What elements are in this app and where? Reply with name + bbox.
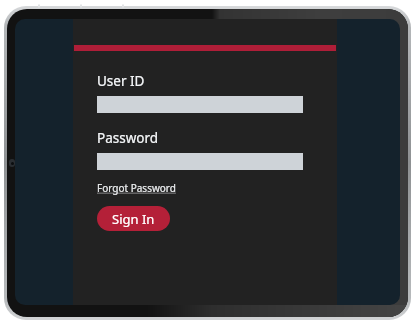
button[interactable]: Sign In	[97, 206, 170, 231]
staticText: Forgot Password	[97, 181, 176, 195]
button[interactable]: Forgot Password	[97, 181, 176, 195]
staticText: Password	[97, 129, 159, 147]
staticText: Sign In	[112, 210, 155, 228]
staticText: User ID	[97, 72, 145, 90]
